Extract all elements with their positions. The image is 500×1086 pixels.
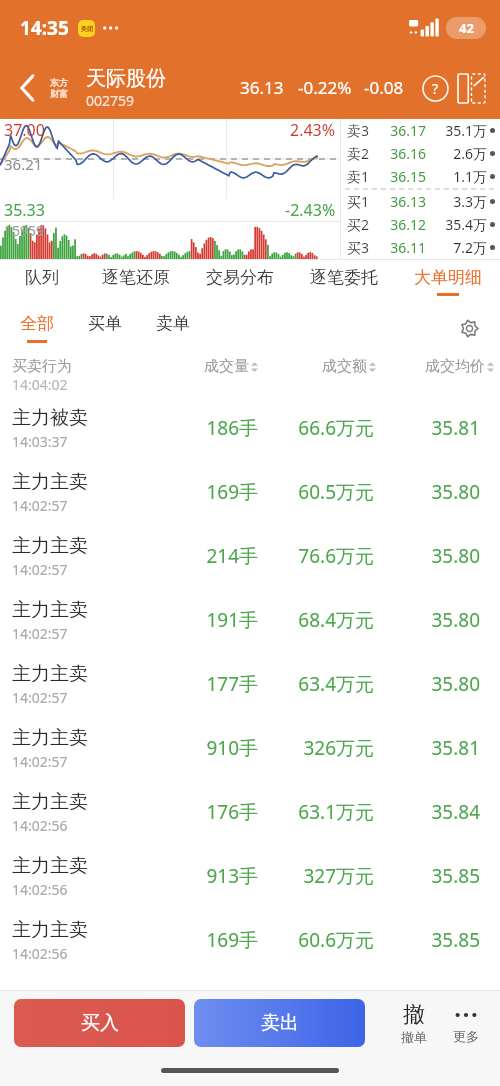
button[interactable]: 卖单	[144, 313, 202, 343]
staticText: 169手	[162, 927, 258, 953]
staticText: 14:02:57	[12, 688, 68, 707]
staticText: 14:04:02	[12, 375, 68, 392]
staticText: 35.80	[374, 479, 480, 505]
staticText: 队列	[25, 267, 59, 288]
button[interactable]: 买入	[14, 999, 185, 1047]
staticText: 66.6万元	[258, 415, 374, 441]
staticText: 买入	[81, 1011, 119, 1035]
button[interactable]: 主力主卖	[0, 460, 500, 524]
staticText: 15959	[4, 221, 45, 240]
staticText: 买单	[88, 313, 122, 334]
staticText: 002759	[86, 91, 135, 110]
button[interactable]: 大单明细	[396, 260, 500, 303]
staticText: 910手	[162, 735, 258, 761]
button[interactable]: 成交量	[154, 357, 258, 376]
staticText: 14:02:57	[12, 560, 68, 579]
staticText: 63.4万元	[258, 671, 374, 697]
staticText: 主力被卖	[12, 406, 88, 430]
staticText: -2.43%	[285, 199, 336, 221]
staticText: 买卖行为	[12, 357, 72, 376]
staticText: 14:03:37	[12, 432, 68, 451]
staticText: 42	[459, 19, 474, 37]
button[interactable]: 卖3	[341, 119, 500, 142]
staticText: 卖出	[261, 1011, 299, 1035]
staticText: 37.00	[4, 119, 45, 141]
staticText: 326万元	[258, 735, 374, 761]
staticText: 36.12	[378, 215, 426, 234]
staticText: 36.16	[378, 144, 426, 163]
staticText: 主力主卖	[12, 470, 88, 494]
staticText: 35.81	[374, 735, 480, 761]
staticText: 撤	[403, 1001, 425, 1029]
staticText: 913手	[162, 863, 258, 889]
staticText: 14:02:56	[12, 880, 68, 899]
staticText: 35.33	[4, 199, 45, 221]
staticText: 60.5万元	[258, 479, 374, 505]
button[interactable]: Help	[418, 71, 452, 105]
staticText: 卖2	[347, 144, 378, 163]
button[interactable]: 队列	[0, 260, 84, 303]
button[interactable]: 全部	[8, 313, 66, 343]
staticText: 35.80	[374, 671, 480, 697]
staticText: 36.13	[378, 192, 426, 211]
button[interactable]: 主力主卖	[0, 844, 500, 908]
staticText: 35.80	[374, 607, 480, 633]
staticText: 成交均价	[425, 357, 485, 376]
button[interactable]: 主力主卖	[0, 716, 500, 780]
staticText: 主力主卖	[12, 918, 88, 942]
staticText: 1.1万	[426, 167, 487, 186]
button[interactable]: Switch layout	[454, 71, 488, 105]
button[interactable]: 逐笔还原	[84, 260, 188, 303]
staticText: 14:35	[20, 15, 69, 41]
button[interactable]: 主力主卖	[0, 588, 500, 652]
staticText: 大单明细	[414, 267, 482, 288]
staticText: 卖3	[347, 121, 378, 140]
staticText: 35.85	[374, 927, 480, 953]
staticText: 买1	[347, 192, 378, 211]
button[interactable]: 成交额	[258, 357, 376, 376]
button[interactable]: Settings	[452, 311, 486, 345]
button[interactable]: 逐笔委托	[292, 260, 396, 303]
staticText: 36.21	[4, 154, 43, 174]
staticText: 成交额	[322, 357, 367, 376]
staticText: 76.6万元	[258, 543, 374, 569]
staticText: -0.22%	[298, 76, 352, 99]
button[interactable]: 交易分布	[188, 260, 292, 303]
button[interactable]: 买2	[341, 213, 500, 236]
button[interactable]: 买1	[341, 190, 500, 213]
staticText: 主力主卖	[12, 726, 88, 750]
staticText: 36.17	[378, 121, 426, 140]
button[interactable]: 买单	[76, 313, 134, 343]
staticText: 176手	[162, 799, 258, 825]
staticText: 214手	[162, 543, 258, 569]
button[interactable]: 卖1	[341, 165, 500, 188]
staticText: 186手	[162, 415, 258, 441]
staticText: 2.43%	[290, 119, 336, 141]
staticText: 14:02:56	[12, 944, 68, 963]
button[interactable]: 卖2	[341, 142, 500, 165]
button[interactable]: 主力主卖	[0, 652, 500, 716]
button[interactable]: 卖出	[194, 999, 365, 1047]
button[interactable]: 主力主卖	[0, 780, 500, 844]
staticText: 买3	[347, 238, 378, 257]
button[interactable]: 撤	[388, 1001, 440, 1045]
button[interactable]: 天际股份	[86, 66, 166, 110]
staticText: 63.1万元	[258, 799, 374, 825]
staticText: 36.15	[378, 167, 426, 186]
button[interactable]: 主力主卖	[0, 908, 500, 972]
button[interactable]: 主力主卖	[0, 524, 500, 588]
staticText: 36.13	[240, 76, 284, 99]
staticText: 14:02:56	[12, 816, 68, 835]
button[interactable]: Back	[10, 71, 44, 105]
button[interactable]: 东方财富	[44, 77, 74, 99]
staticText: 美团	[81, 25, 93, 33]
staticText: 36.11	[378, 238, 426, 257]
button[interactable]: 主力被卖	[0, 396, 500, 460]
staticText: 35.84	[374, 799, 480, 825]
button[interactable]: 成交均价	[376, 357, 494, 376]
staticText: -0.08	[364, 76, 404, 99]
staticText: 财富	[50, 88, 68, 99]
button[interactable]: 更多	[440, 1001, 492, 1044]
staticText: 169手	[162, 479, 258, 505]
button[interactable]: 买3	[341, 236, 500, 259]
